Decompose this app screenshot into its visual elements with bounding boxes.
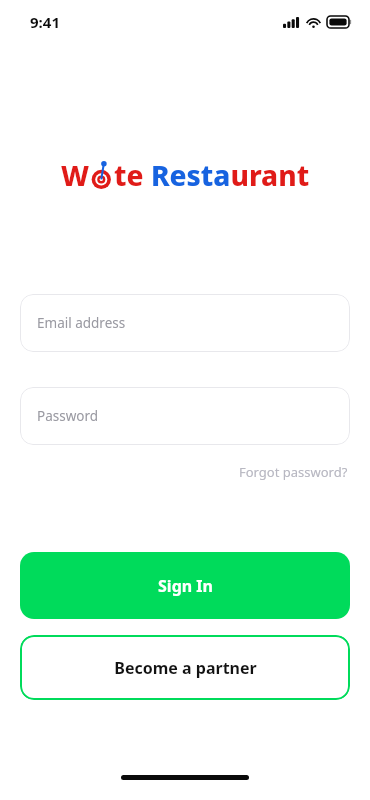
- button[interactable]: Forgot password?: [237, 460, 350, 484]
- button[interactable]: Email address: [20, 294, 350, 352]
- button[interactable]: Sign In: [20, 552, 350, 619]
- other: Cellular signal: [283, 17, 300, 28]
- button[interactable]: Become a partner: [20, 635, 350, 700]
- staticText: Restaurant: [151, 156, 310, 194]
- staticText: Password: [37, 407, 99, 425]
- staticText: 9:41: [30, 12, 60, 32]
- staticText: Forgot password?: [239, 463, 348, 481]
- other: Wi-Fi: [306, 17, 321, 28]
- other: Battery: [327, 16, 352, 28]
- staticText: Email address: [37, 314, 126, 332]
- staticText: Become a partner: [114, 657, 257, 679]
- staticText: Sign In: [158, 575, 213, 597]
- staticText: te: [114, 156, 151, 194]
- staticText: W: [61, 156, 90, 194]
- button[interactable]: Password: [20, 387, 350, 445]
